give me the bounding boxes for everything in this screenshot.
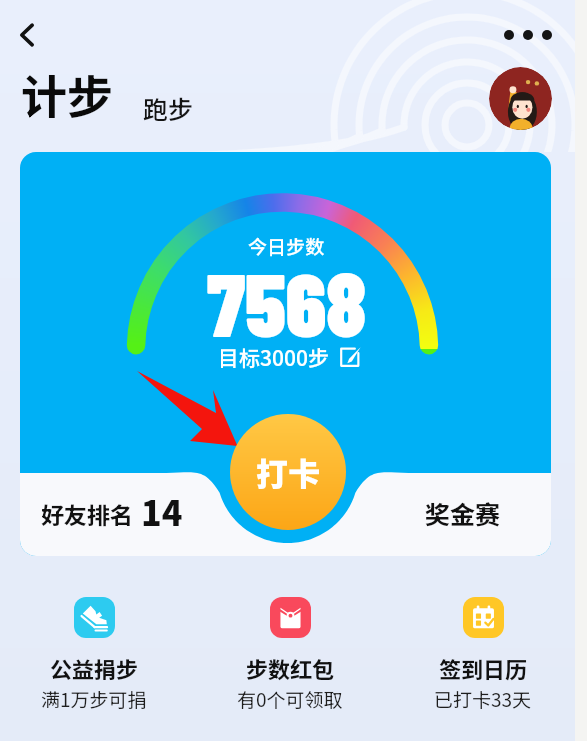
button[interactable]: 公益捐步: [16, 590, 172, 713]
staticText: 奖金赛: [425, 495, 501, 531]
staticText: 满1万步可捐: [41, 685, 147, 713]
button[interactable]: 计步: [21, 61, 113, 128]
staticText: 14: [141, 487, 183, 536]
button[interactable]: More options: [495, 14, 561, 56]
staticText: 已打卡33天: [434, 685, 532, 713]
staticText: 打卡: [256, 449, 321, 495]
button[interactable]: 奖金赛: [398, 482, 528, 544]
staticText: 签到日历: [439, 652, 528, 684]
button[interactable]: 目标3000步: [218, 340, 361, 374]
button[interactable]: 今日步数: [20, 152, 551, 556]
staticText: 有0个可领取: [237, 685, 343, 713]
button[interactable]: Back: [4, 12, 50, 58]
button[interactable]: Profile: [489, 67, 552, 130]
button[interactable]: 签到日历: [405, 590, 561, 713]
button[interactable]: 跑步: [143, 90, 194, 126]
staticText: 好友排名: [41, 497, 133, 530]
staticText: 目标3000步: [218, 342, 329, 372]
button[interactable]: 步数红包: [212, 590, 368, 713]
staticText: 7568: [207, 249, 366, 355]
staticText: 步数红包: [246, 652, 335, 684]
button[interactable]: 好友排名: [34, 482, 224, 544]
staticText: 今日步数: [248, 232, 325, 260]
button[interactable]: 打卡: [230, 414, 346, 530]
staticText: 公益捐步: [50, 652, 139, 684]
